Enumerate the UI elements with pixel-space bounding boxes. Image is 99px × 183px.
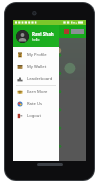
- staticText: My Wallet: [27, 64, 47, 70]
- button[interactable]: Earn More: [13, 86, 59, 98]
- staticText: Earn More: [27, 89, 48, 95]
- button[interactable]: Logout: [13, 110, 59, 122]
- button[interactable]: My Wallet: [13, 61, 59, 73]
- button[interactable]: Leaderboard: [13, 73, 59, 85]
- button[interactable]: My Profile: [13, 49, 59, 61]
- staticText: hello: [32, 38, 40, 42]
- staticText: My Profile: [27, 52, 47, 58]
- staticText: Logout: [27, 113, 41, 119]
- staticText: Ravi Shah: [32, 31, 54, 37]
- staticText: Rate Us: [27, 101, 42, 107]
- button[interactable]: Ravi Shah: [13, 25, 59, 47]
- staticText: Leaderboard: [27, 76, 53, 82]
- staticText: Jeopardy: [15, 39, 33, 44]
- button[interactable]: Rate Us: [13, 98, 59, 110]
